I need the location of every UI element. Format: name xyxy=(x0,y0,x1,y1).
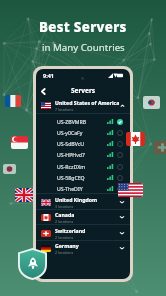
button[interactable]: US-SdBVcU xyxy=(36,138,130,149)
button[interactable]: US-RczDXm xyxy=(36,161,130,172)
staticText: 9:41 xyxy=(43,72,54,79)
staticText: US-ZBVMRB xyxy=(57,118,87,125)
button[interactable]: Germany xyxy=(36,240,130,256)
button[interactable]: Canada xyxy=(36,209,130,225)
staticText: 2 locations xyxy=(55,219,74,224)
button[interactable]: US-y0CaFy xyxy=(36,127,130,138)
button[interactable]: US-ZBVMRB xyxy=(36,116,130,127)
staticText: 2 locations xyxy=(55,235,74,240)
staticText: Canada xyxy=(55,211,75,218)
button[interactable]: US-HPHvd7 xyxy=(36,149,130,160)
staticText: Servers xyxy=(71,86,96,95)
button[interactable]: United Kingdom xyxy=(36,194,130,210)
staticText: US-58gCEQ xyxy=(57,174,85,181)
staticText: Best Servers xyxy=(39,18,127,36)
staticText: in Many Countries xyxy=(42,41,125,54)
staticText: US-y0CaFy xyxy=(57,129,83,136)
staticText: United States of America xyxy=(55,99,120,106)
staticText: 2 locations xyxy=(55,250,74,255)
staticText: US-RczDXm xyxy=(57,163,86,170)
button[interactable]: Back xyxy=(39,87,48,96)
staticText: US-TheDIY xyxy=(57,185,83,192)
button[interactable]: United States of America xyxy=(36,98,130,113)
staticText: 7 locations xyxy=(55,107,74,112)
staticText: Switzerland xyxy=(55,227,86,234)
staticText: US-HPHvd7 xyxy=(57,151,85,158)
button[interactable]: US-58gCEQ xyxy=(36,172,130,183)
button[interactable]: US-TheDIY xyxy=(36,183,130,194)
staticText: 3 locations xyxy=(55,204,74,209)
staticText: Germany xyxy=(55,242,79,249)
button[interactable]: Switzerland xyxy=(36,225,130,241)
staticText: United Kingdom xyxy=(55,196,98,203)
staticText: US-SdBVcU xyxy=(57,140,85,147)
